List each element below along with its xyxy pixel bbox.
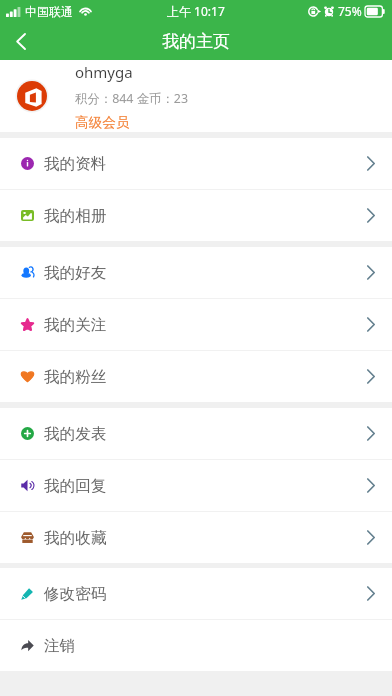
button[interactable]: 我的回复: [0, 460, 392, 511]
staticText: 75%: [338, 3, 362, 19]
staticText: 我的收藏: [44, 528, 107, 548]
staticText: 上午 10:17: [167, 3, 225, 19]
button[interactable]: 我的相册: [0, 190, 392, 241]
button[interactable]: Back: [0, 22, 42, 60]
staticText: 我的回复: [44, 476, 107, 496]
button[interactable]: 我的资料: [0, 138, 392, 189]
staticText: 我的相册: [44, 206, 107, 226]
button[interactable]: 我的收藏: [0, 512, 392, 563]
staticText: 我的发表: [44, 424, 107, 444]
button[interactable]: 我的关注: [0, 299, 392, 350]
staticText: 修改密码: [44, 584, 107, 604]
button[interactable]: 注销: [0, 620, 392, 671]
staticText: 我的关注: [44, 315, 107, 335]
button[interactable]: 我的粉丝: [0, 351, 392, 402]
staticText: ohmyga: [75, 62, 133, 82]
staticText: 高级会员: [75, 114, 130, 131]
button[interactable]: 修改密码: [0, 568, 392, 619]
staticText: 我的主页: [162, 31, 230, 52]
staticText: 我的粉丝: [44, 367, 107, 387]
staticText: 注销: [44, 636, 76, 656]
button[interactable]: ohmyga: [0, 60, 392, 132]
button[interactable]: 我的好友: [0, 247, 392, 298]
staticText: 中国联通: [25, 4, 73, 19]
staticText: 我的好友: [44, 263, 107, 283]
staticText: 我的资料: [44, 154, 107, 174]
staticText: 积分：844 金币：23: [75, 90, 189, 107]
button[interactable]: 我的发表: [0, 408, 392, 459]
